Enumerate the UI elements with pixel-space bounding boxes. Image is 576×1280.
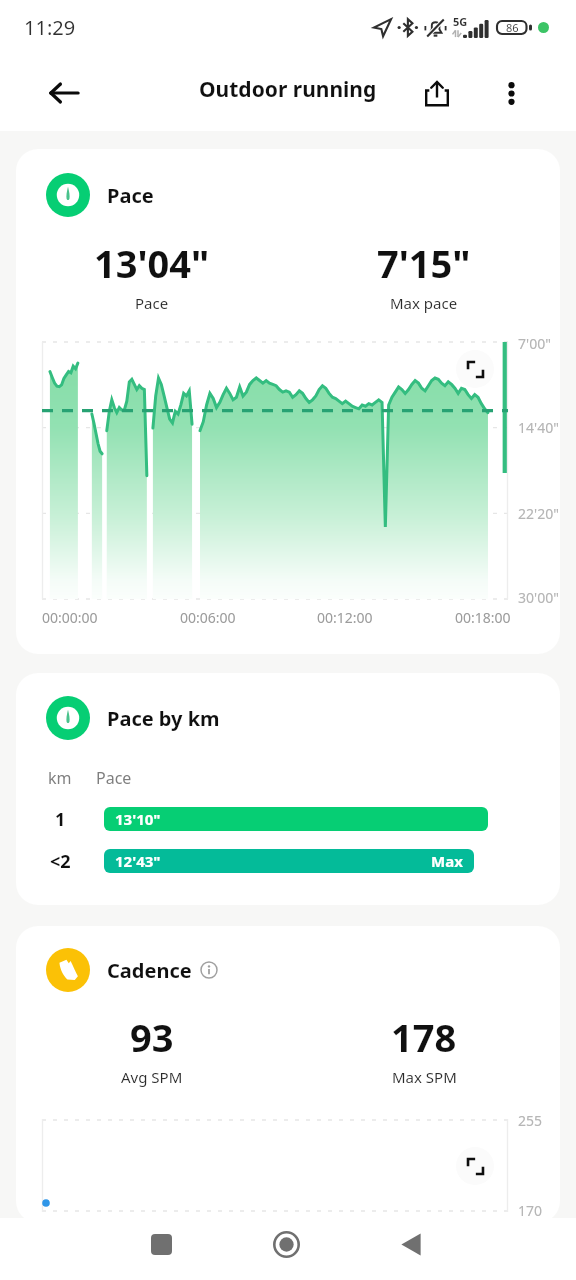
staticText: 22'20" [518,504,559,523]
button[interactable]: Cadence [16,926,560,1223]
button[interactable]: Back [38,67,90,119]
staticText: Max pace [390,293,458,313]
staticText: Pace [135,293,169,313]
staticText: 178 [391,1011,457,1063]
staticText: 7'00" [518,334,551,353]
staticText: 13'10" [115,809,161,829]
staticText: 13'04" [94,237,210,289]
staticText: km [48,767,72,789]
staticText: 170 [518,1201,543,1220]
button[interactable]: Expand cadence chart [456,1147,494,1185]
button[interactable]: Pace [16,149,560,654]
button[interactable]: Share [411,67,463,119]
staticText: Outdoor running [199,75,377,104]
staticText: 00:18:00 [455,608,511,627]
staticText: 255 [518,1111,543,1130]
staticText: 12'43" [115,851,161,871]
staticText: 11:29 [24,14,76,41]
button[interactable]: Expand pace chart [456,350,494,388]
staticText: Avg SPM [121,1067,183,1087]
staticText: Pace [96,767,132,789]
staticText: 30'00" [518,588,559,607]
button[interactable]: Back [379,1213,443,1275]
staticText: 7'15" [377,237,471,289]
staticText: 00:00:00 [42,608,98,627]
staticText: 00:12:00 [317,608,373,627]
staticText: Pace [107,182,154,209]
button[interactable]: Pace by km [16,673,560,905]
staticText: <2 [50,849,71,873]
staticText: Max [431,851,463,871]
staticText: 14'40" [518,418,559,437]
button[interactable]: Recent apps [129,1213,193,1275]
staticText: Max SPM [392,1067,457,1087]
staticText: 86 [506,20,519,35]
staticText: Cadence [107,957,192,984]
staticText: Pace by km [107,705,220,732]
button[interactable]: Home [254,1213,318,1275]
staticText: 00:06:00 [180,608,236,627]
staticText: 1 [55,807,66,831]
staticText: 5G [453,14,468,29]
staticText: 93 [130,1011,174,1063]
button[interactable]: More options [485,67,537,119]
